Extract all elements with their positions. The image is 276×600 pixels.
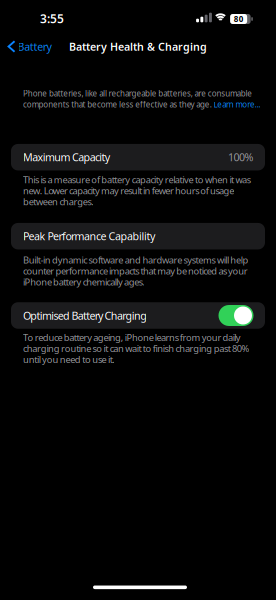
button[interactable]: Optimised Battery Charging <box>218 305 253 326</box>
button[interactable]: Back <box>8 39 51 54</box>
staticText: Learn more... <box>213 99 260 110</box>
staticText: counter performance impacts that may be … <box>23 265 248 277</box>
button[interactable]: Learn more... <box>213 99 260 110</box>
staticText: charging routine so it can wait to finis… <box>23 342 249 354</box>
staticText: Peak Performance Capability <box>23 229 155 243</box>
staticText: iPhone battery chemically ages. <box>23 276 145 288</box>
staticText: Maximum Capacity <box>23 150 110 164</box>
staticText: This is a measure of battery capacity re… <box>23 173 251 186</box>
staticText: 100% <box>228 150 253 164</box>
staticText: Battery Health & Charging <box>69 39 207 54</box>
staticText: To reduce battery ageing, iPhone learns … <box>23 331 241 343</box>
staticText: between charges. <box>23 195 94 208</box>
staticText: Phone batteries, like all rechargeable b… <box>23 88 252 99</box>
staticText: Battery <box>17 39 51 54</box>
staticText: until you need to use it. <box>23 353 115 365</box>
staticText: Built-in dynamic software and hardware s… <box>23 254 248 266</box>
staticText: components that become less effective as… <box>23 99 213 110</box>
staticText: Optimised Battery Charging <box>23 308 147 323</box>
staticText: new. Lower capacity may result in fewer … <box>23 184 234 197</box>
staticText: 80 <box>234 14 244 24</box>
staticText: 3:55 <box>40 10 64 26</box>
